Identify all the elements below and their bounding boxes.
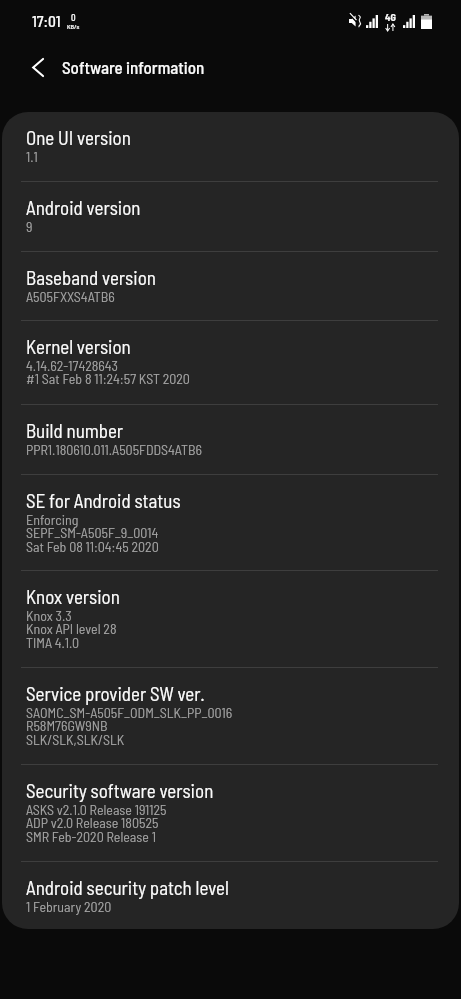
staticText: 17:01 [32, 11, 61, 30]
staticText: ASKS v2.1.0 Release 191125 ADP v2.0 Rele… [26, 801, 167, 845]
button[interactable]: Android version [2, 182, 459, 252]
staticText: Baseband version [26, 267, 156, 288]
staticText: KB/s [67, 23, 80, 30]
button[interactable]: Service provider SW ver. [2, 668, 459, 765]
staticText: Knox 3.3 Knox API level 28 TIMA 4.1.0 [26, 607, 117, 651]
button[interactable]: Security software version [2, 765, 459, 862]
button[interactable]: Build number [2, 405, 459, 475]
staticText: Knox version [26, 586, 120, 607]
staticText: SAOMC_SM-A505F_ODM_SLK_PP_0016 R58M76GW9… [26, 704, 233, 748]
staticText: SE for Android status [26, 490, 181, 511]
staticText: Android security patch level [26, 877, 229, 898]
button[interactable]: One UI version [2, 112, 459, 182]
staticText: 1 February 2020 [26, 898, 112, 915]
staticText: 1.1 [26, 148, 38, 165]
staticText: Service provider SW ver. [26, 683, 205, 704]
staticText: 4.14.62-17428643 #1 Sat Feb 8 11:24:57 K… [26, 357, 190, 387]
staticText: A505FXXS4ATB6 [26, 288, 115, 305]
button[interactable]: Kernel version [2, 321, 459, 405]
staticText: Security software version [26, 780, 214, 801]
staticText: 0 [71, 12, 76, 23]
staticText: Build number [26, 420, 124, 441]
button[interactable]: Back [19, 48, 57, 86]
staticText: Enforcing SEPF_SM-A505F_9_0014 Sat Feb 0… [26, 511, 159, 555]
button[interactable]: SE for Android status [2, 475, 459, 571]
staticText: PPR1.180610.011.A505FDDS4ATB6 [26, 441, 202, 458]
staticText: Android version [26, 197, 141, 218]
staticText: One UI version [26, 127, 131, 148]
staticText: 4G [385, 11, 396, 23]
button[interactable]: Android security patch level [2, 862, 459, 929]
button[interactable]: Baseband version [2, 252, 459, 321]
button[interactable]: Knox version [2, 571, 459, 668]
staticText: 9 [26, 218, 33, 235]
staticText: Software information [62, 57, 205, 77]
staticText: Kernel version [26, 336, 131, 357]
